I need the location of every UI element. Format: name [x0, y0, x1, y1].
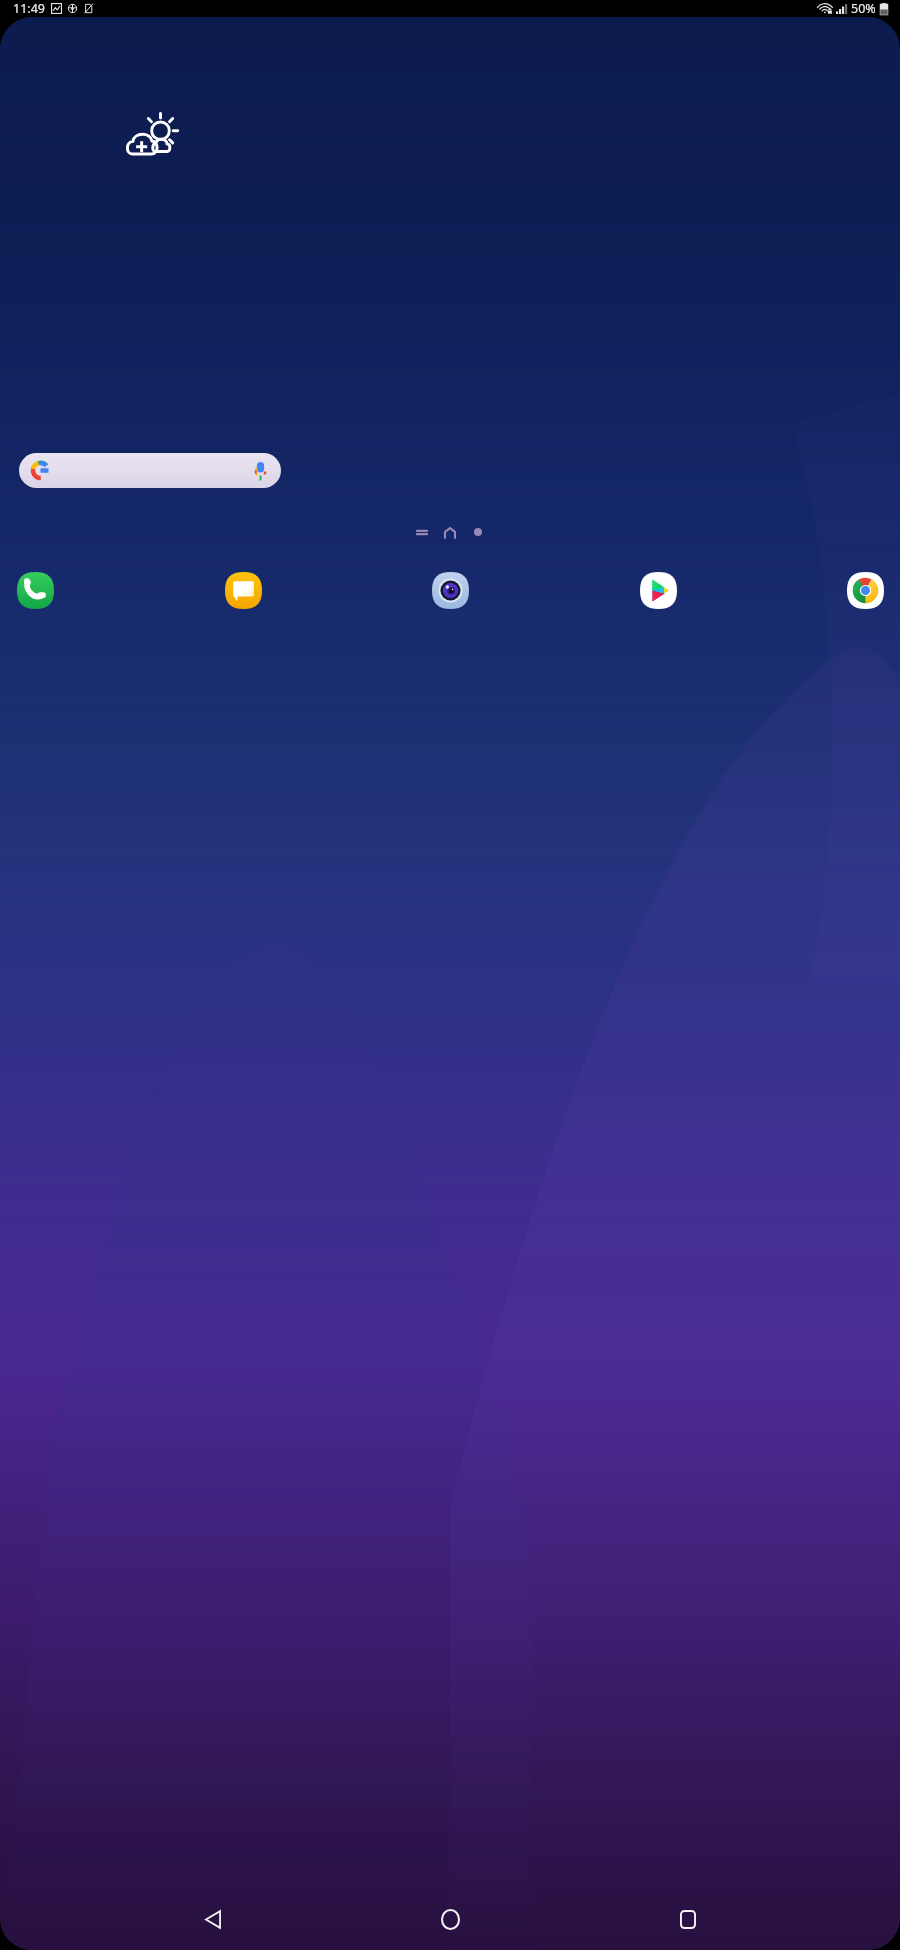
- button[interactable]: Weather: [124, 117, 173, 158]
- button[interactable]: Chrome: [841, 566, 889, 614]
- button[interactable]: Home page: [438, 523, 462, 541]
- staticText: 50%: [851, 0, 876, 17]
- button[interactable]: Play Store: [634, 566, 682, 614]
- button[interactable]: Camera: [426, 566, 474, 614]
- button[interactable]: App drawer page: [411, 524, 433, 540]
- staticText: 11:49: [13, 0, 45, 17]
- button[interactable]: Next page: [467, 524, 489, 540]
- button[interactable]: Phone: [11, 566, 59, 614]
- button[interactable]: Back: [188, 1894, 238, 1944]
- button[interactable]: Recent apps: [663, 1894, 713, 1944]
- button[interactable]: Google search: [19, 453, 281, 488]
- button[interactable]: Messages: [219, 566, 267, 614]
- button[interactable]: Home: [425, 1894, 475, 1944]
